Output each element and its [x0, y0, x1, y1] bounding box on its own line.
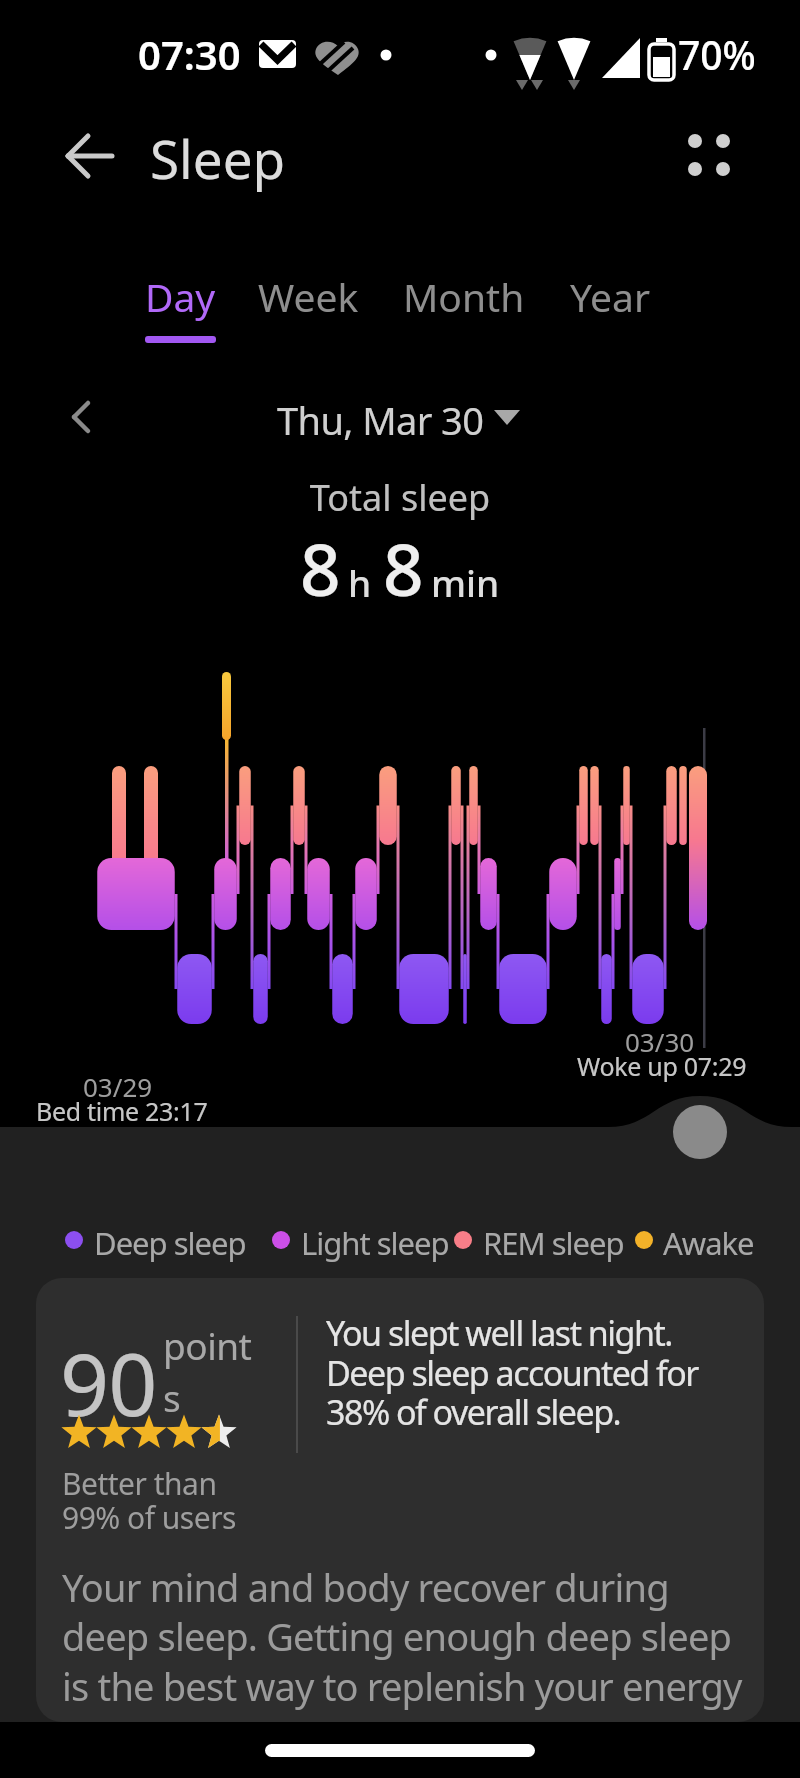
- staticText: REM sleep: [483, 1222, 624, 1264]
- button[interactable]: Day: [131, 262, 231, 352]
- button[interactable]: 90: [36, 1278, 764, 1722]
- staticText: Month: [403, 270, 525, 323]
- staticText: 03/29: [83, 1069, 153, 1104]
- staticText: 8: [383, 520, 424, 617]
- staticText: h: [348, 557, 372, 607]
- staticText: Awake: [663, 1222, 754, 1264]
- staticText: Sleep: [150, 122, 286, 194]
- staticText: 8: [300, 520, 341, 617]
- staticText: 70%: [678, 28, 756, 81]
- staticText: Light sleep: [301, 1222, 449, 1264]
- staticText: Bed time 23:17: [36, 1094, 208, 1128]
- staticText: Thu, Mar 30: [277, 394, 484, 444]
- staticText: Week: [258, 270, 359, 323]
- staticText: You slept well last night. Deep sleep ac…: [326, 1310, 698, 1435]
- staticText: points: [163, 1320, 265, 1423]
- staticText: Day: [145, 270, 216, 323]
- staticText: Better than 99% of users: [62, 1463, 236, 1537]
- staticText: Total sleep: [0, 473, 800, 522]
- staticText: Deep sleep: [94, 1222, 246, 1264]
- staticText: Woke up 07:29: [577, 1049, 747, 1083]
- staticText: Year: [570, 270, 651, 323]
- button[interactable]: [52, 126, 116, 186]
- button[interactable]: Week: [244, 262, 374, 352]
- staticText: 07:30: [138, 27, 241, 81]
- button[interactable]: [672, 120, 744, 192]
- button[interactable]: [50, 390, 106, 446]
- button[interactable]: Year: [556, 262, 671, 352]
- staticText: 90: [60, 1324, 157, 1441]
- staticText: min: [431, 557, 500, 607]
- staticText: Your mind and body recover during deep s…: [62, 1561, 742, 1722]
- button[interactable]: Thu, Mar 30: [270, 392, 530, 442]
- staticText: 03/30: [625, 1024, 695, 1059]
- button[interactable]: [673, 1105, 727, 1159]
- button[interactable]: Month: [389, 262, 544, 352]
